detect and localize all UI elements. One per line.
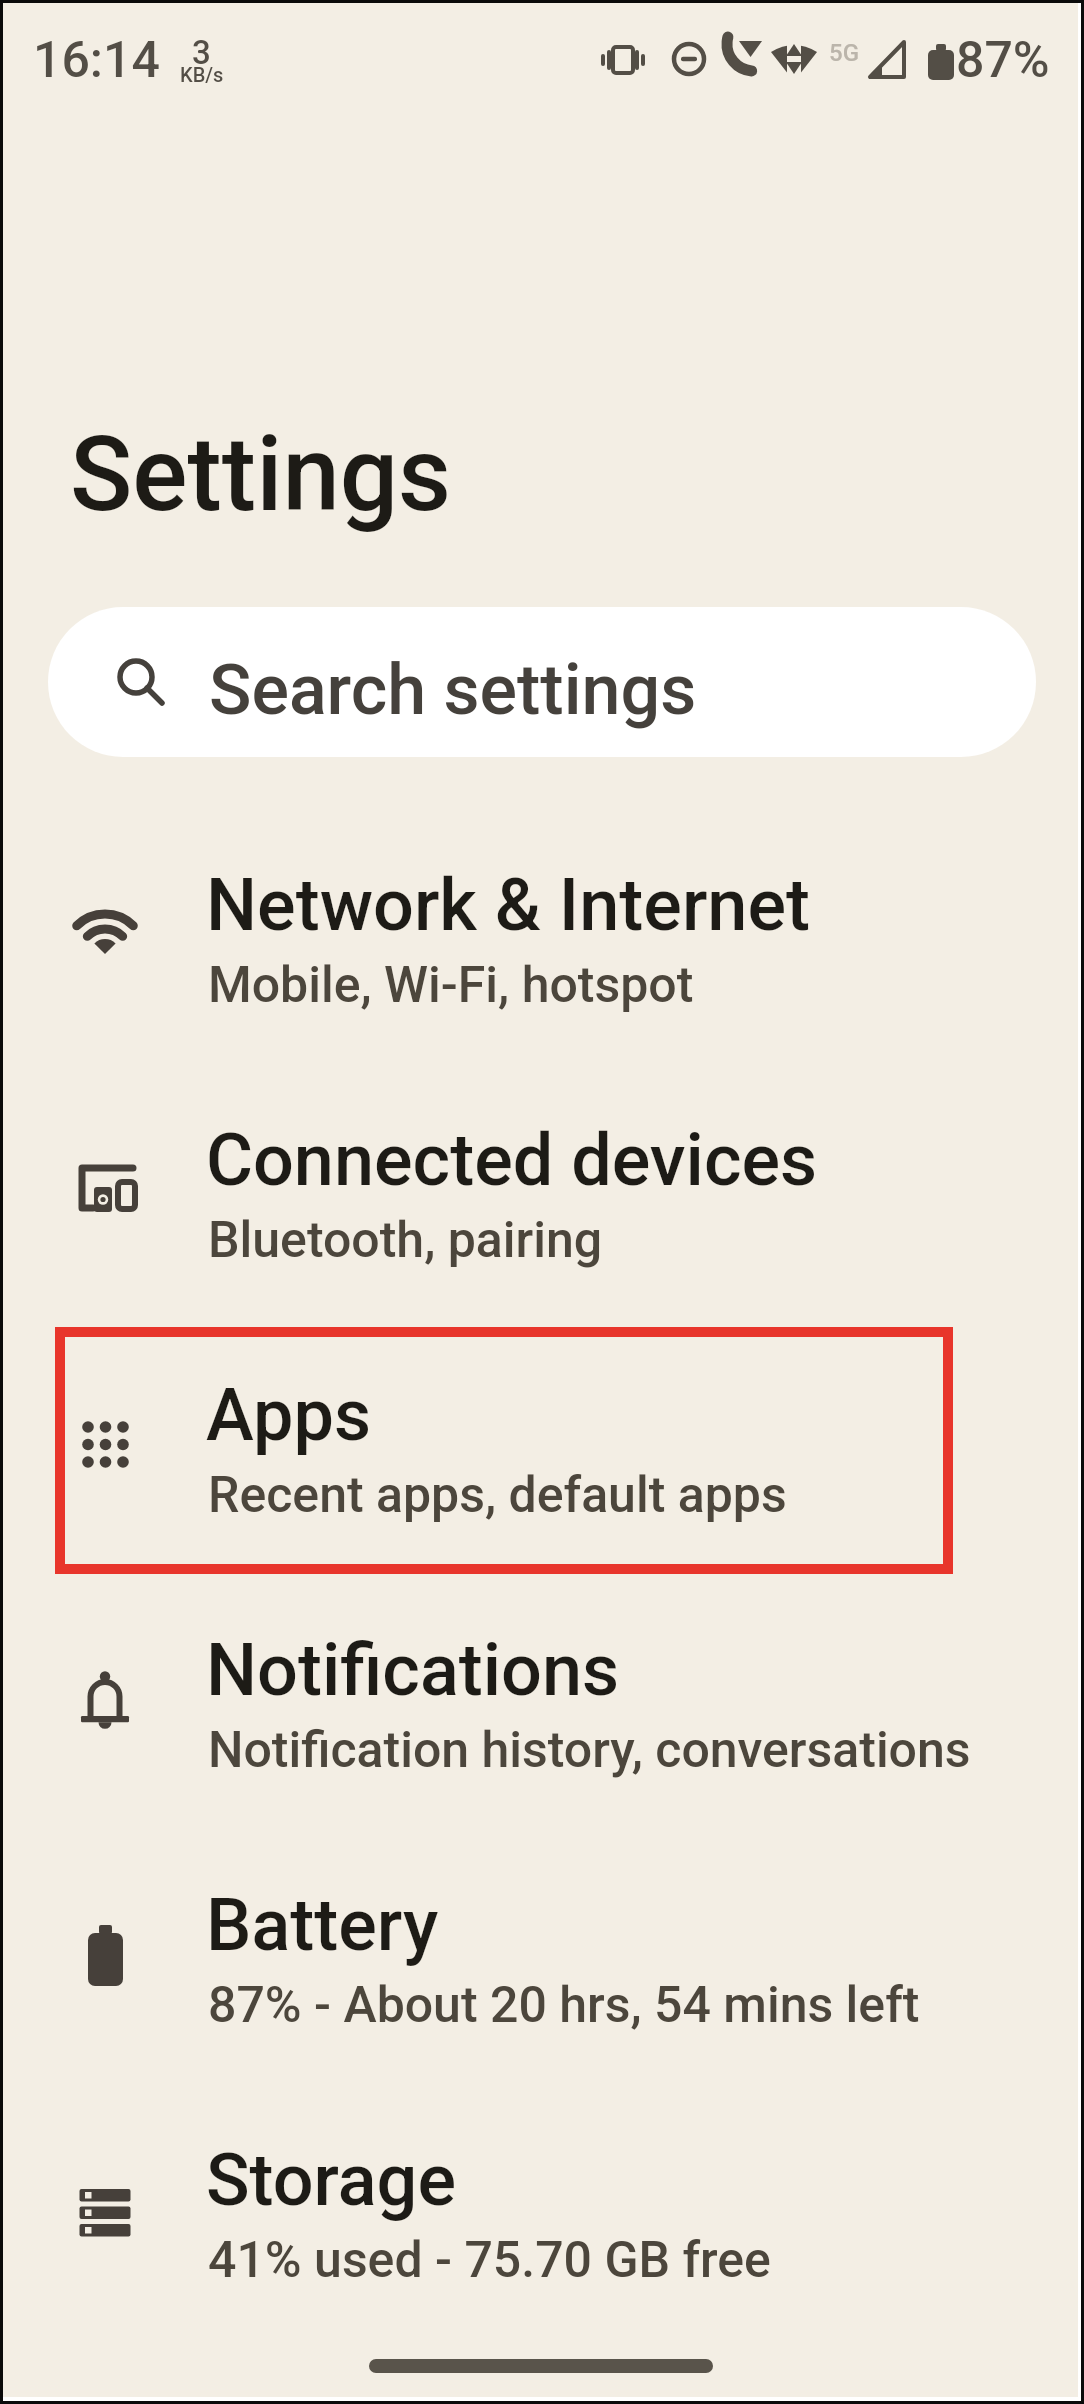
staticText: KB/s: [180, 63, 224, 86]
staticText: Notifications: [206, 1628, 620, 1712]
button[interactable]: Apps: [3, 1314, 1081, 1569]
staticText: Battery: [206, 1883, 439, 1967]
staticText: 3: [192, 33, 211, 72]
button[interactable]: Search settings: [48, 607, 1036, 757]
staticText: Network & Internet: [206, 863, 810, 947]
staticText: Apps: [206, 1373, 372, 1457]
staticText: Settings: [70, 414, 452, 535]
button[interactable]: Notifications: [3, 1569, 1081, 1824]
button[interactable]: Network & Internet: [3, 804, 1081, 1059]
staticText: Notification history, conversations: [208, 1721, 971, 1780]
staticText: 5G: [829, 39, 859, 67]
staticText: Bluetooth, pairing: [208, 1211, 603, 1270]
button[interactable]: Connected devices: [3, 1059, 1081, 1314]
button[interactable]: Storage: [3, 2079, 1081, 2334]
staticText: Storage: [206, 2138, 456, 2222]
button[interactable]: Battery: [3, 1824, 1081, 2079]
staticText: Connected devices: [206, 1118, 818, 1202]
staticText: 16:14: [33, 31, 160, 90]
staticText: 87% - About 20 hrs, 54 mins left: [208, 1976, 920, 2035]
staticText: 87%: [956, 31, 1050, 90]
staticText: Recent apps, default apps: [208, 1466, 787, 1525]
staticText: Search settings: [209, 649, 697, 731]
staticText: 41% used - 75.70 GB free: [208, 2231, 771, 2290]
staticText: Mobile, Wi-Fi, hotspot: [208, 956, 694, 1015]
